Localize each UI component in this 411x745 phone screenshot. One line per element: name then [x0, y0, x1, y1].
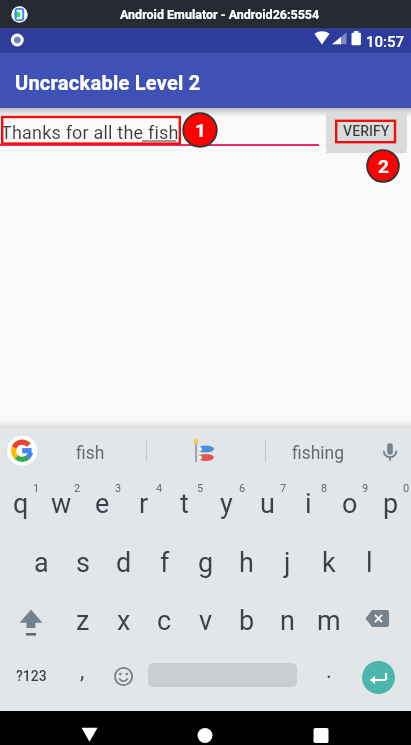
button[interactable]: h: [226, 537, 267, 589]
staticText: o: [342, 488, 358, 520]
staticText: fish: [76, 443, 105, 464]
button[interactable]: fish: [48, 431, 132, 476]
staticText: .: [326, 658, 332, 684]
button[interactable]: r: [123, 478, 164, 530]
staticText: Uncrackable Level 2: [15, 71, 201, 94]
button[interactable]: [286, 711, 356, 745]
staticText: g: [198, 547, 214, 579]
staticText: ,: [80, 658, 85, 684]
staticText: 2: [378, 155, 389, 177]
staticText: v: [199, 605, 213, 637]
button[interactable]: e: [82, 478, 123, 530]
button[interactable]: fishing: [268, 431, 368, 476]
staticText: VERIFY: [343, 123, 390, 139]
button[interactable]: f: [144, 537, 185, 589]
staticText: r: [139, 488, 149, 520]
button[interactable]: [349, 652, 411, 711]
staticText: f: [160, 547, 170, 579]
button[interactable]: .: [308, 645, 349, 697]
staticText: j: [284, 547, 291, 579]
button[interactable]: ,: [62, 645, 103, 697]
button[interactable]: [103, 652, 144, 711]
button[interactable]: [55, 711, 125, 745]
button[interactable]: [185, 430, 225, 472]
staticText: 4: [156, 482, 163, 495]
button[interactable]: q: [0, 478, 41, 530]
button[interactable]: z: [62, 595, 103, 647]
button[interactable]: t: [164, 478, 205, 530]
staticText: t: [180, 488, 189, 520]
staticText: 0: [403, 482, 410, 495]
staticText: Android Emulator - Android26:5554: [120, 7, 320, 22]
staticText: 2: [74, 482, 81, 495]
staticText: Thanks for all the fish: [1, 122, 179, 143]
button[interactable]: k: [308, 537, 349, 589]
staticText: 1: [195, 119, 206, 141]
button[interactable]: [170, 711, 240, 745]
button[interactable]: v: [185, 595, 226, 647]
staticText: p: [383, 488, 399, 520]
button[interactable]: [370, 428, 411, 473]
staticText: b: [239, 605, 255, 637]
button[interactable]: p: [370, 478, 411, 530]
staticText: fishing: [292, 443, 345, 464]
button[interactable]: VERIFY: [326, 112, 407, 151]
staticText: x: [117, 605, 131, 637]
button[interactable]: i: [288, 478, 329, 530]
button[interactable]: [349, 593, 411, 653]
staticText: 3: [115, 482, 122, 495]
staticText: s: [76, 547, 90, 579]
staticText: c: [157, 605, 172, 637]
staticText: a: [34, 547, 49, 579]
button[interactable]: o: [329, 478, 370, 530]
staticText: k: [322, 547, 336, 579]
button[interactable]: b: [226, 595, 267, 647]
staticText: 1: [33, 482, 40, 495]
staticText: 8: [321, 482, 328, 495]
staticText: 10:57: [366, 33, 405, 51]
staticText: d: [116, 547, 132, 579]
button[interactable]: d: [103, 537, 144, 589]
staticText: w: [51, 488, 72, 520]
staticText: l: [366, 547, 373, 579]
staticText: n: [280, 605, 295, 637]
staticText: ?123: [16, 668, 47, 684]
staticText: y: [220, 488, 233, 520]
staticText: 6: [239, 482, 246, 495]
staticText: m: [317, 605, 341, 637]
button[interactable]: [0, 593, 62, 653]
button[interactable]: w: [41, 478, 82, 530]
button[interactable]: l: [349, 537, 390, 589]
staticText: 5: [197, 482, 204, 495]
button[interactable]: a: [21, 537, 62, 589]
staticText: 7: [280, 482, 287, 495]
staticText: e: [95, 488, 110, 520]
button[interactable]: s: [62, 537, 103, 589]
button[interactable]: ?123: [0, 650, 62, 702]
staticText: i: [305, 488, 312, 520]
button[interactable]: y: [206, 478, 247, 530]
button[interactable]: c: [144, 595, 185, 647]
button[interactable]: m: [308, 595, 349, 647]
staticText: z: [76, 605, 90, 637]
button[interactable]: g: [185, 537, 226, 589]
button[interactable]: u: [247, 478, 288, 530]
button[interactable]: n: [267, 595, 308, 647]
button[interactable]: [2, 431, 42, 471]
button[interactable]: x: [103, 595, 144, 647]
staticText: 9: [362, 482, 369, 495]
button[interactable]: j: [267, 537, 308, 589]
staticText: u: [260, 488, 275, 520]
staticText: h: [239, 547, 254, 579]
staticText: q: [13, 488, 29, 520]
